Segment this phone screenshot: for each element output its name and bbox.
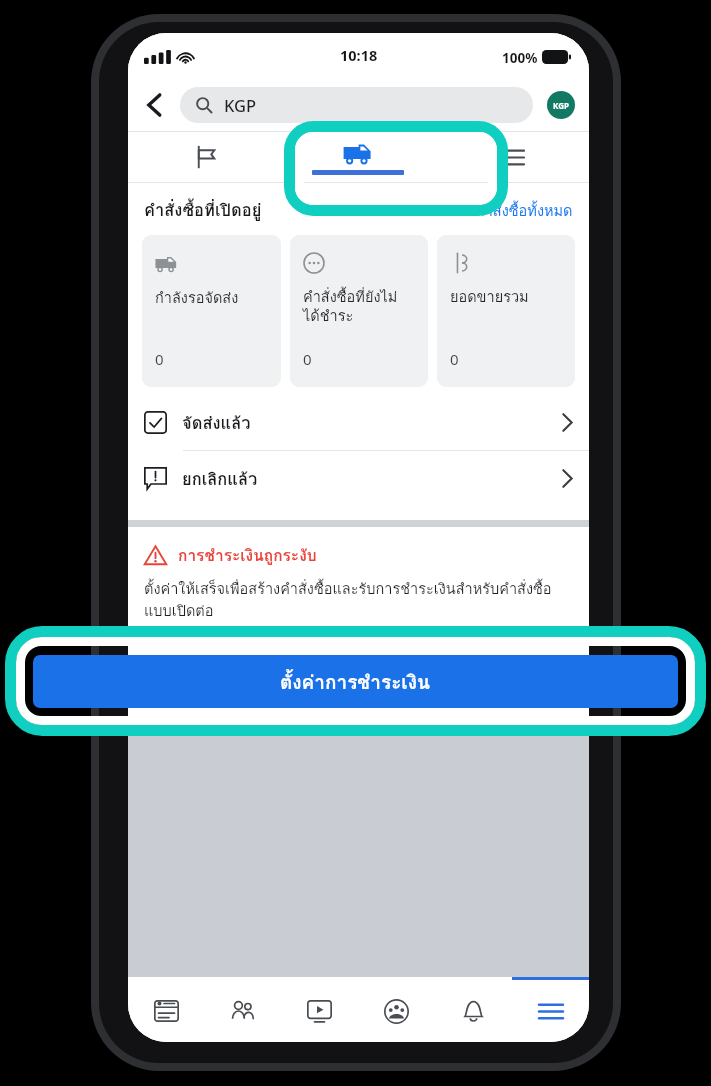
button[interactable]: ยอดขายรวม: [437, 235, 575, 387]
staticText: 100%: [502, 49, 538, 67]
staticText: กำลังรอจัดส่ง: [155, 286, 239, 309]
button[interactable]: Menu: [435, 132, 589, 182]
staticText: 10:18: [340, 45, 378, 65]
staticText: ยอดขายรวม: [450, 285, 529, 308]
staticText: จัดส่งแล้ว: [182, 410, 251, 436]
staticText: ตั้งค่าให้เสร็จเพื่อสร้างคำสั่งซื้อและรั…: [144, 577, 577, 622]
staticText: คำสั่งซื้อที่เปิดอยู่: [144, 197, 262, 223]
button[interactable]: จัดส่งแล้ว: [128, 395, 589, 450]
staticText: 0: [303, 349, 312, 369]
button[interactable]: ยกเลิกแล้ว: [128, 451, 589, 506]
staticText: การชำระเงินถูกระงับ: [178, 543, 317, 568]
button[interactable]: Friends: [204, 980, 281, 1042]
button[interactable]: Menu: [512, 980, 589, 1042]
staticText: ยกเลิกแล้ว: [182, 466, 258, 492]
button[interactable]: KGP: [533, 79, 589, 131]
button[interactable]: คำสั่งซื้อทั้งหมด: [475, 199, 573, 222]
button[interactable]: Notifications: [435, 980, 512, 1042]
button[interactable]: คำสั่งซื้อที่ยังไม่ ได้ชำระ: [290, 235, 428, 387]
button[interactable]: Pages: [128, 132, 281, 182]
button[interactable]: KGP: [180, 87, 533, 123]
staticText: KGP: [553, 100, 569, 111]
button[interactable]: Orders: [281, 132, 435, 182]
button[interactable]: Back: [128, 79, 180, 131]
button[interactable]: Watch: [281, 980, 358, 1042]
staticText: 0: [155, 349, 164, 369]
button[interactable]: News Feed: [128, 980, 204, 1042]
staticText: KGP: [224, 94, 257, 116]
staticText: ตั้งค่าการชำระเงิน: [280, 667, 431, 697]
staticText: คำสั่งซื้อที่ยังไม่ ได้ชำระ: [303, 285, 398, 328]
button[interactable]: ตั้งค่าการชำระเงิน: [33, 655, 678, 708]
button[interactable]: Groups: [358, 980, 435, 1042]
staticText: 0: [450, 349, 459, 369]
staticText: คำสั่งซื้อทั้งหมด: [475, 199, 573, 222]
button[interactable]: กำลังรอจัดส่ง: [142, 235, 281, 387]
